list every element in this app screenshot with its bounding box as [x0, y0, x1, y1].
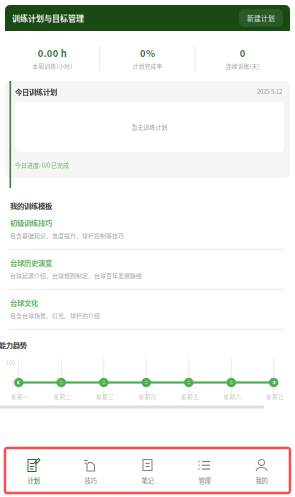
button[interactable]: 技巧 — [62, 448, 119, 493]
staticText: 新建计划 — [247, 13, 275, 23]
staticText: 能力趋势 — [0, 340, 27, 350]
button[interactable]: 我的 — [233, 448, 290, 493]
staticText: 管理 — [198, 476, 210, 485]
staticText: 0% — [140, 46, 155, 60]
staticText: 星期六 — [223, 392, 241, 401]
staticText: 今日训练计划 — [15, 86, 57, 97]
staticText: 包含台球场景、灯光、球杆的介绍 — [10, 311, 100, 320]
staticText: 今日进度: 0/0 已完成 — [15, 161, 69, 169]
staticText: 训练计划与目标管理 — [12, 12, 84, 24]
staticText: 台球文化 — [10, 297, 38, 308]
staticText: 0.00 h — [38, 46, 67, 60]
button[interactable]: 笔记 — [119, 448, 176, 493]
staticText: 初级训练技巧 — [10, 217, 52, 228]
staticText: 技巧 — [84, 476, 96, 485]
staticText: 笔记 — [141, 476, 153, 485]
button[interactable]: 初级训练技巧 — [10, 210, 285, 250]
staticText: 我的训练模板 — [10, 200, 52, 211]
staticText: 计划完成率 — [132, 62, 162, 70]
staticText: 我的 — [255, 476, 267, 485]
staticText: 星期日 — [266, 392, 284, 401]
staticText: 星期四 — [138, 392, 156, 401]
staticText: 星期三 — [96, 392, 114, 401]
button[interactable]: 新建计划 — [239, 9, 283, 27]
staticText: 星期一 — [11, 392, 29, 401]
staticText: 0 — [240, 46, 246, 60]
staticText: 2025-5-12 — [257, 87, 282, 96]
staticText: 包含基础知识、准度提升、球杆控制等技巧 — [10, 231, 124, 240]
button[interactable]: 计划 — [5, 448, 62, 493]
button[interactable]: 台球历史演变 — [10, 250, 285, 290]
staticText: 100 — [6, 358, 15, 367]
staticText: 台球起源介绍、台球规则制定、台球百年发展脉络 — [10, 271, 142, 280]
staticText: 星期五 — [181, 392, 199, 401]
staticText: 0 — [12, 379, 15, 388]
staticText: 本周训练(小时) — [32, 62, 72, 70]
button[interactable]: 台球文化 — [10, 290, 285, 330]
button[interactable]: 管理 — [176, 448, 233, 493]
staticText: 星期二 — [53, 392, 71, 401]
staticText: 台球历史演变 — [10, 257, 52, 268]
staticText: 暂无训练计划 — [131, 123, 167, 131]
staticText: 计划 — [27, 476, 39, 485]
staticText: 连续训练(天) — [226, 62, 260, 70]
